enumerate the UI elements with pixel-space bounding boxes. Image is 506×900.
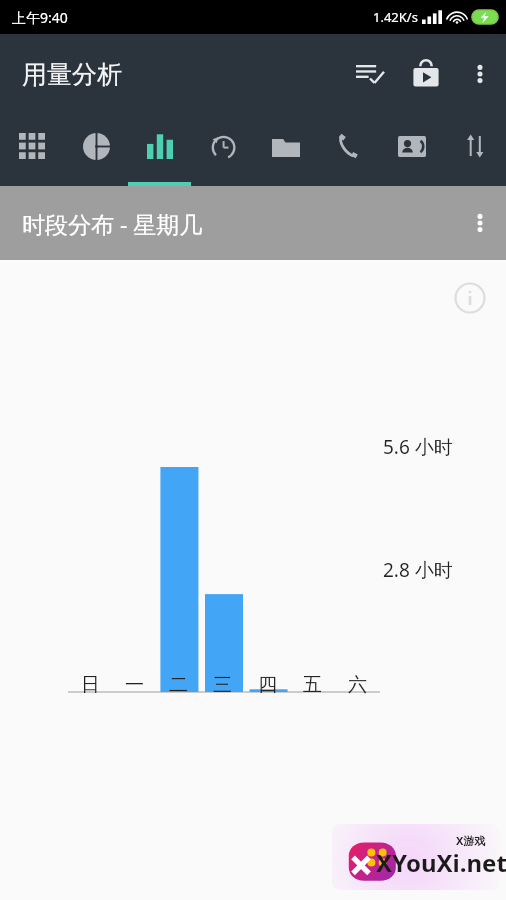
button[interactable]: Calls — [317, 114, 380, 186]
button[interactable]: History — [191, 114, 254, 186]
staticText: 日 — [81, 673, 100, 697]
staticText: 一 — [125, 673, 144, 697]
staticText: 二 — [169, 673, 188, 697]
staticText: 四 — [258, 673, 277, 697]
button[interactable]: Info — [452, 280, 488, 316]
staticText: 1.42K/s — [373, 8, 418, 26]
button[interactable]: Files — [254, 114, 317, 186]
button[interactable]: Contacts — [380, 114, 443, 186]
staticText: 用量分析 — [22, 59, 122, 90]
staticText: X游戏 — [456, 833, 486, 848]
button[interactable]: Chart options — [454, 197, 506, 249]
button[interactable]: 时段分布 - 星期几 — [0, 186, 506, 260]
staticText: 5.6 小时 — [383, 434, 453, 460]
staticText: 2.8 小时 — [383, 557, 453, 583]
staticText: 六 — [348, 673, 367, 697]
button[interactable]: Bar chart — [128, 114, 191, 186]
staticText: 上午9:40 — [12, 8, 68, 27]
button[interactable]: Playlist add check — [342, 46, 398, 102]
button[interactable]: Apps — [0, 114, 64, 186]
button[interactable]: More options — [454, 48, 506, 100]
staticText: XYouXi.net — [376, 846, 506, 879]
staticText: 时段分布 - 星期几 — [22, 208, 203, 239]
button[interactable]: Data transfer — [443, 114, 506, 186]
staticText: 五 — [303, 673, 322, 697]
button[interactable]: Pie chart — [64, 114, 128, 186]
staticText: 三 — [213, 673, 232, 697]
button[interactable]: Play Store — [398, 46, 454, 102]
